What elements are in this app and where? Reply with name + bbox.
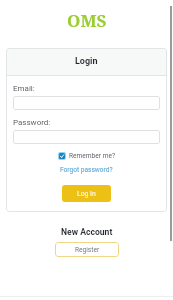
button[interactable]: Email field [13, 96, 160, 110]
button[interactable]: Log In [62, 185, 111, 202]
staticText: OMS [67, 9, 107, 29]
staticText: Log In [77, 190, 96, 198]
button[interactable]: Password field [13, 130, 160, 144]
staticText: Remember me? [69, 152, 116, 160]
staticText: Email: [13, 84, 35, 93]
staticText: Password: [13, 118, 51, 127]
staticText: New Account [61, 227, 113, 237]
staticText: Register [75, 246, 100, 254]
button[interactable]: Register [55, 242, 119, 257]
staticText: Login [75, 56, 98, 67]
button[interactable]: Remember me? [58, 152, 116, 160]
button[interactable]: Forgot password? [60, 166, 113, 174]
